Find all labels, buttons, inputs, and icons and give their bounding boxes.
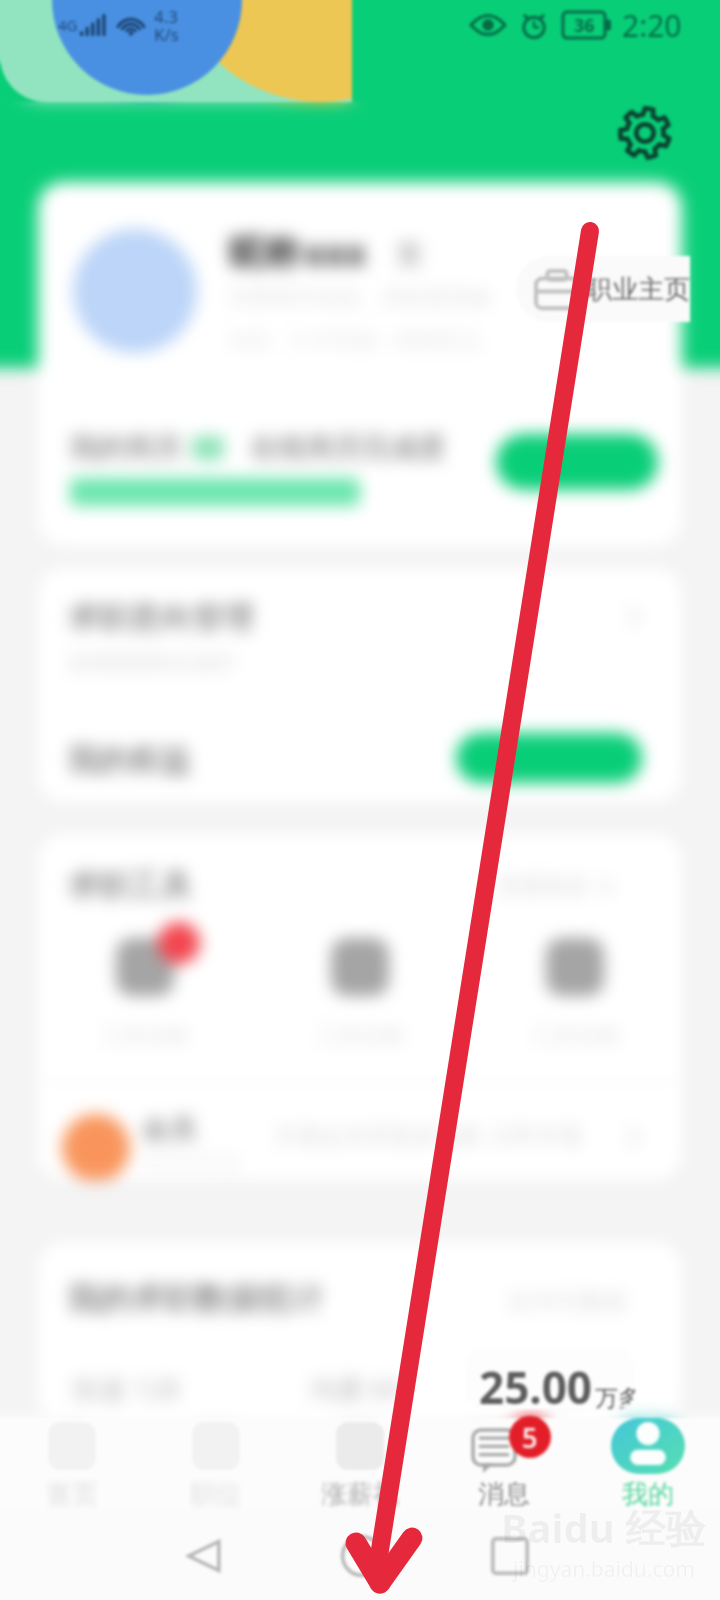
staticText: 首页 — [46, 1478, 98, 1510]
button[interactable]: Recent apps — [480, 1534, 540, 1578]
staticText: 4G — [58, 15, 78, 35]
staticText: 职位 — [190, 1478, 242, 1510]
staticText: 36 — [574, 13, 595, 38]
button[interactable]: 涨薪礼 — [288, 1418, 432, 1510]
button[interactable]: 我的 — [576, 1418, 720, 1510]
staticText: 首页 — [46, 1478, 98, 1510]
button[interactable]: 首页 — [0, 1418, 144, 1510]
staticText: 我的 — [622, 1478, 674, 1510]
button[interactable]: 首页 — [0, 1418, 144, 1510]
staticText: 消息 — [478, 1478, 530, 1510]
button[interactable]: Back — [178, 1534, 238, 1578]
staticText: 我的权益 — [68, 740, 192, 779]
button[interactable]: 职业主页 — [516, 256, 690, 322]
button[interactable]: 涨薪礼 — [288, 1418, 432, 1510]
staticText: Baidu 经验 — [501, 1500, 706, 1555]
button[interactable]: Settings — [617, 105, 673, 161]
button[interactable]: 职位 — [144, 1418, 288, 1510]
staticText: 女 — [395, 234, 425, 272]
staticText: 在线简历完成度 — [250, 430, 446, 465]
button[interactable]: Home — [332, 1534, 392, 1578]
staticText: 面试 12 — [530, 1370, 622, 1407]
staticText: 开通会员享更多优惠 — [274, 1122, 481, 1151]
button[interactable]: 5 — [432, 1418, 576, 1510]
staticText: 我的 — [622, 1478, 674, 1510]
staticText: jingyan.baidu.com — [513, 1555, 695, 1584]
button[interactable] — [456, 733, 642, 783]
button[interactable]: Back — [178, 1534, 238, 1578]
staticText: xxx — [304, 228, 367, 277]
button[interactable]: 昵称 — [38, 182, 682, 546]
button[interactable]: 职位 — [144, 1418, 288, 1510]
button[interactable] — [496, 434, 658, 490]
button[interactable]: Home — [332, 1534, 392, 1578]
staticText: 2:20 — [622, 5, 682, 46]
staticText: 求职工具 — [68, 866, 192, 905]
staticText: 我的求职数据统计 — [68, 1278, 324, 1318]
button[interactable]: 5 — [432, 1418, 576, 1510]
staticText: 涨薪礼 — [321, 1478, 399, 1510]
staticText: 5 — [522, 1419, 538, 1456]
staticText: 我的简历 — [70, 430, 182, 465]
staticText: 职位 — [190, 1478, 242, 1510]
button[interactable]: 工具名称 — [38, 938, 252, 1068]
staticText: 5 — [522, 1419, 538, 1456]
staticText: 25.00 — [479, 1357, 593, 1409]
staticText: 求职意向管理 — [68, 598, 254, 637]
button[interactable]: 工具名称 — [252, 938, 467, 1068]
staticText: 涨薪礼 — [321, 1478, 399, 1510]
staticText: 消息 — [478, 1478, 530, 1510]
button[interactable]: 工具名称 — [467, 938, 682, 1068]
staticText: 4.3 K/s — [154, 5, 179, 46]
button[interactable]: Recent apps — [480, 1534, 540, 1578]
staticText: 会员 — [142, 1112, 196, 1146]
staticText: 昵称 — [228, 230, 300, 275]
button[interactable]: 我的 — [576, 1418, 720, 1510]
staticText: 万多 — [595, 1384, 635, 1409]
button[interactable]: 会员 — [38, 1090, 682, 1180]
button[interactable]: 求职意向管理 — [68, 598, 254, 637]
staticText: 投递 128 — [72, 1370, 180, 1407]
staticText: 职业主页 — [586, 273, 690, 306]
staticText: 沟通 64 — [309, 1370, 401, 1407]
